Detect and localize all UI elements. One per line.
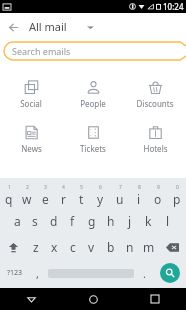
button[interactable]: Search [153,260,186,286]
staticText: a [14,213,21,229]
staticText: 7 [119,184,122,191]
staticText: b [107,239,115,255]
staticText: n [126,239,134,255]
button[interactable]: Backspace [158,234,186,260]
button[interactable]: Change folder [81,18,99,36]
button[interactable]: Recent apps [124,288,186,310]
staticText: Tickets [80,143,106,154]
staticText: m [143,239,155,255]
button[interactable]: k [139,208,158,234]
button[interactable]: ?123 [0,260,29,286]
staticText: o [154,191,162,207]
button[interactable]: 6 [91,182,110,208]
button[interactable]: j [120,208,139,234]
staticText: 4 [62,184,65,191]
button[interactable]: 3 [36,182,54,208]
button[interactable]: x [45,234,63,260]
staticText: j [128,213,132,229]
button[interactable]: s [26,208,44,234]
staticText: q [5,191,13,207]
staticText: e [42,191,49,207]
staticText: r [61,191,66,207]
button[interactable]: Hotels [124,123,186,156]
button[interactable]: Shift [0,234,27,260]
staticText: t [79,191,84,207]
staticText: 3 [44,184,47,191]
button[interactable]: n [120,234,139,260]
staticText: k [145,213,152,229]
button[interactable]: l [158,208,177,234]
staticText: 2 [26,184,29,191]
staticText: z [33,239,39,255]
button[interactable]: d [44,208,63,234]
staticText: p [173,191,181,207]
staticText: 0 [176,184,179,191]
staticText: l [166,213,170,229]
button[interactable]: . [136,260,153,286]
button[interactable]: 0 [167,182,186,208]
button[interactable]: Social [0,78,62,111]
button[interactable]: 5 [72,182,91,208]
button[interactable]: Back [0,14,26,40]
button[interactable]: m [139,234,158,260]
button[interactable]: 1 [0,182,18,208]
button[interactable]: 4 [54,182,72,208]
staticText: 1 [8,184,11,191]
staticText: Social [20,98,42,109]
button[interactable]: a [8,208,26,234]
staticText: ?123 [7,268,23,278]
staticText: , [36,266,39,281]
button[interactable]: Home [62,288,124,310]
staticText: y [97,191,104,207]
button[interactable]: v [82,234,101,260]
staticText: 8 [138,184,141,191]
button[interactable]: Back [0,288,62,310]
button[interactable]: 7 [110,182,129,208]
staticText: All mail [29,19,67,34]
staticText: 5 [80,184,83,191]
staticText: Search emails [12,45,71,57]
button[interactable] [46,260,136,286]
staticText: f [70,213,75,229]
button[interactable]: 9 [148,182,167,208]
button[interactable]: h [101,208,120,234]
button[interactable]: People [62,78,124,111]
staticText: Hotels [143,143,168,154]
staticText: h [107,213,115,229]
button[interactable]: f [63,208,82,234]
button[interactable]: , [29,260,46,286]
staticText: v [88,239,95,255]
button[interactable]: 2 [18,182,36,208]
staticText: People [80,98,106,109]
staticText: 6 [99,184,102,191]
button[interactable]: g [82,208,101,234]
staticText: 9 [157,184,160,191]
staticText: . [143,266,146,281]
button[interactable]: z [27,234,45,260]
staticText: c [70,239,76,255]
staticText: s [32,213,38,229]
button[interactable]: c [63,234,82,260]
staticText: i [137,191,141,207]
staticText: g [88,213,96,229]
button[interactable]: 8 [129,182,148,208]
button[interactable]: News [0,123,62,156]
staticText: d [50,213,58,229]
staticText: w [22,191,32,207]
button[interactable]: Discounts [124,78,186,111]
button[interactable]: b [101,234,120,260]
staticText: News [21,143,42,154]
staticText: x [51,239,58,255]
staticText: 10:24 [163,1,184,12]
staticText: u [116,191,124,207]
staticText: Discounts [136,98,174,109]
button[interactable]: Search emails [0,40,186,62]
button[interactable]: Tickets [62,123,124,156]
